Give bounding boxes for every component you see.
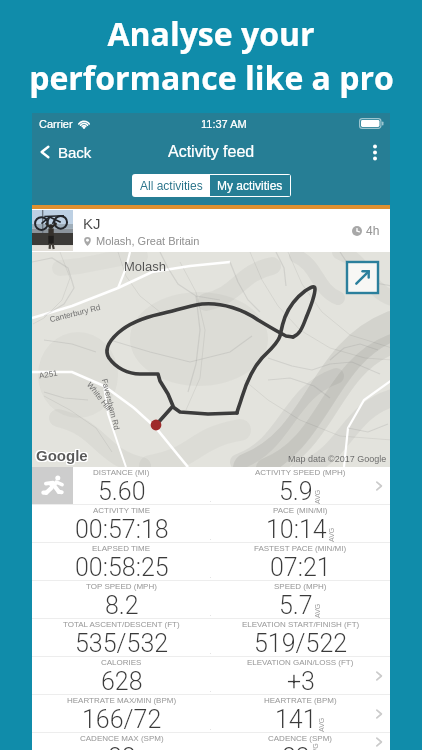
staticText: AVG [311,735,318,750]
staticText: ACTIVITY TIME [93,506,151,515]
staticText: 5.7 [279,591,313,618]
staticText: ACTIVITY SPEED (MPH) [255,468,346,477]
staticText: Back [58,144,92,161]
staticText: 88 [108,743,136,750]
staticText: SPEED (MPH) [274,582,327,591]
staticText: 4h [366,224,380,237]
staticText: Google [35,448,87,465]
staticText: My activities [217,179,283,192]
staticText: Google [36,446,88,463]
staticText: AVG [318,710,326,732]
staticText: TOP SPEED (MPH) [86,582,157,591]
staticText: 628 [101,667,143,694]
staticText: 11:37 AM [201,118,247,130]
staticText: HEARTRATE MAX/MIN (BPM) [67,696,177,705]
button[interactable]: TOP SPEED (MPH) [32,581,390,618]
staticText: Google [36,448,88,465]
button[interactable]: All activities [133,175,210,196]
staticText: Molash, Great Britain [96,235,200,247]
staticText: Activity feed [168,143,255,161]
staticText: Carrier [39,118,73,130]
button[interactable]: More options [360,134,390,170]
staticText: 5.60 [98,477,146,504]
staticText: Google [37,448,89,465]
button[interactable]: ACTIVITY TIME [32,505,390,542]
staticText: All activities [140,179,203,192]
button[interactable]: CADENCE MAX (SPM) [32,733,390,750]
staticText: DISTANCE (MI) [93,468,150,477]
staticText: Faversham Rd [100,378,121,431]
staticText: CALORIES [101,658,142,667]
staticText: Analyse your [107,12,315,56]
staticText: AVG [314,596,322,618]
staticText: CADENCE (SPM) [268,734,333,743]
staticText: 82 [282,743,310,750]
staticText: Google [35,447,87,464]
staticText: CADENCE MAX (SPM) [80,734,164,743]
staticText: AVG [328,520,336,542]
button[interactable]: HEARTRATE MAX/MIN (BPM) [32,695,390,732]
staticText: +3 [287,667,315,694]
staticText: 141 [275,705,317,732]
button[interactable]: DISTANCE (MI) [32,467,390,504]
button[interactable]: Expand map [347,262,378,293]
staticText: Google [36,447,88,464]
staticText: Google [35,446,87,463]
staticText: FASTEST PACE (MIN/MI) [254,544,347,553]
staticText: PACE (MIN/MI) [273,506,328,515]
staticText: 07:21 [270,553,331,580]
staticText: Map data ©2017 Google [288,454,387,464]
button[interactable]: ELAPSED TIME [32,543,390,580]
staticText: HEARTRATE (BPM) [264,696,337,705]
staticText: White Hill [85,380,113,413]
staticText: 00:57:18 [75,515,169,542]
button[interactable]: Back [32,134,100,170]
staticText: Molash [124,259,166,274]
button[interactable]: CALORIES [32,657,390,694]
staticText: 166/72 [82,705,162,732]
staticText: AVG [314,482,322,504]
staticText: performance like a pro [29,56,394,100]
button[interactable]: TOTAL ASCENT/DESCENT (FT) [32,619,390,656]
staticText: ELAPSED TIME [92,544,151,553]
staticText: Canterbury Rd [49,303,102,324]
button[interactable]: My activities [210,175,290,196]
staticText: 535/532 [75,629,169,656]
staticText: 10:14 [266,515,327,542]
staticText: ELEVATION GAIN/LOSS (FT) [247,658,354,667]
staticText: 8.2 [105,591,139,618]
staticText: Google [37,447,89,464]
staticText: 5.9 [279,477,313,504]
staticText: A251 [38,368,59,381]
staticText: TOTAL ASCENT/DESCENT (FT) [63,620,180,629]
staticText: 519/522 [254,629,348,656]
staticText: Google [37,446,89,463]
staticText: ELEVATION START/FINISH (FT) [242,620,360,629]
staticText: 00:58:25 [75,553,169,580]
staticText: KJ [83,215,101,232]
